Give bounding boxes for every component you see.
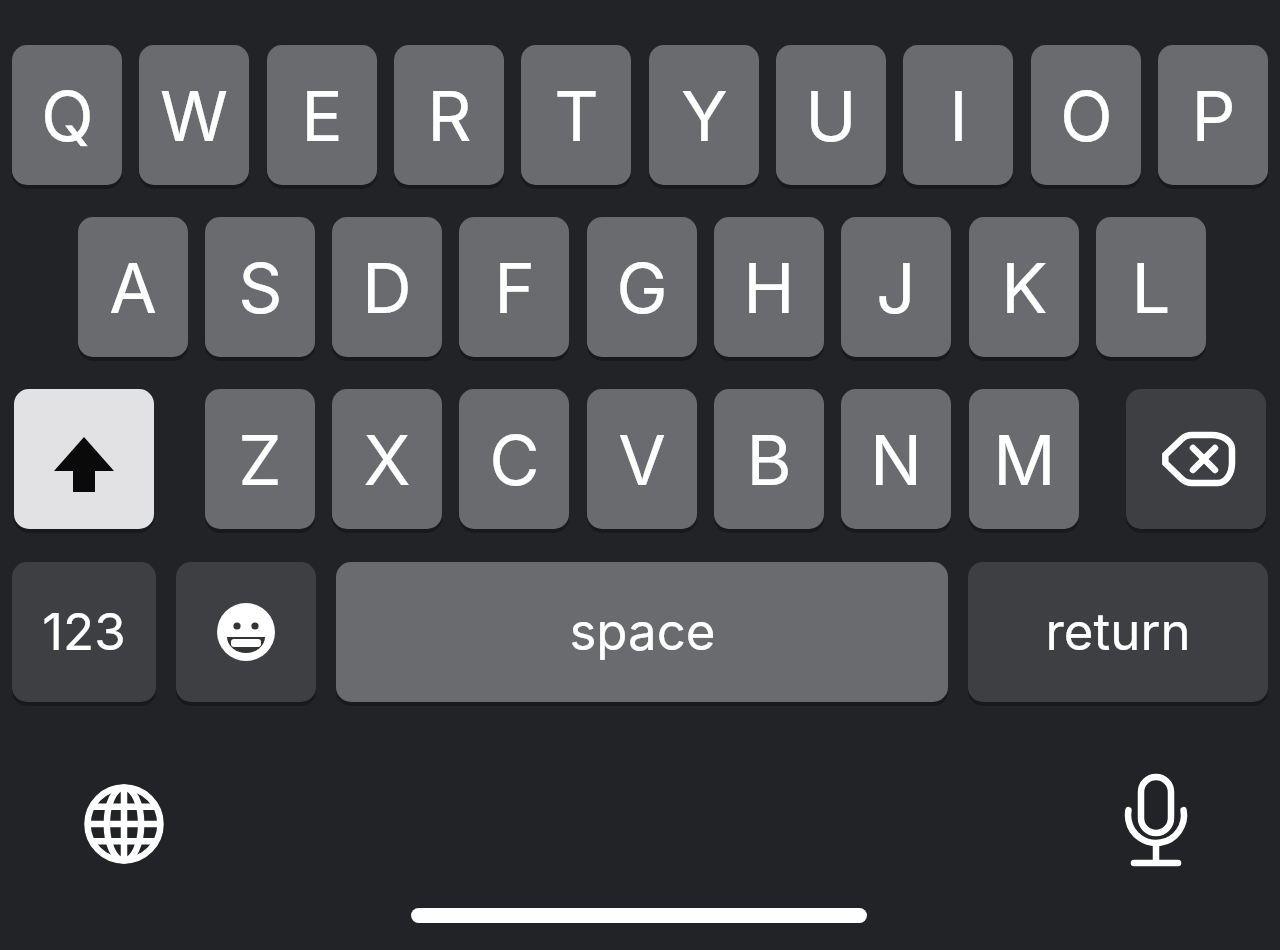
staticText: C (489, 418, 540, 501)
button[interactable]: A (78, 217, 188, 357)
staticText: G (616, 246, 668, 329)
button[interactable]: return (968, 562, 1268, 702)
staticText: Z (238, 418, 282, 501)
staticText: B (746, 418, 792, 501)
staticText: I (949, 74, 968, 157)
button[interactable]: 123 (12, 562, 156, 702)
staticText: J (876, 246, 916, 329)
button[interactable]: R (394, 45, 504, 185)
button[interactable]: O (1031, 45, 1141, 185)
staticText: Y (681, 74, 728, 157)
button[interactable]: space (336, 562, 948, 702)
button[interactable]: Z (205, 389, 315, 529)
button[interactable]: J (841, 217, 951, 357)
staticText: X (363, 418, 411, 501)
staticText: T (554, 74, 599, 157)
button[interactable]: E (267, 45, 377, 185)
staticText: U (805, 74, 857, 157)
staticText: E (301, 74, 343, 157)
staticText: 123 (42, 601, 126, 663)
button[interactable]: I (903, 45, 1013, 185)
staticText: H (743, 246, 795, 329)
staticText: P (1191, 74, 1236, 157)
staticText: space (569, 601, 716, 663)
staticText: V (618, 418, 666, 501)
button[interactable]: S (205, 217, 315, 357)
button[interactable] (75, 774, 175, 874)
button[interactable]: T (521, 45, 631, 185)
button[interactable] (14, 389, 154, 529)
button[interactable]: V (587, 389, 697, 529)
staticText: S (238, 246, 283, 329)
button[interactable]: Y (649, 45, 759, 185)
button[interactable]: F (459, 217, 569, 357)
staticText: L (1131, 246, 1171, 329)
staticText: Q (41, 74, 94, 157)
button[interactable]: N (841, 389, 951, 529)
button[interactable]: D (332, 217, 442, 357)
button[interactable]: P (1158, 45, 1268, 185)
button[interactable]: G (587, 217, 697, 357)
button[interactable]: W (139, 45, 249, 185)
button[interactable]: M (969, 389, 1079, 529)
button[interactable]: X (332, 389, 442, 529)
staticText: M (993, 418, 1056, 501)
staticText: W (160, 74, 228, 157)
button[interactable]: L (1096, 217, 1206, 357)
button[interactable]: Q (12, 45, 122, 185)
staticText: return (1045, 601, 1191, 663)
staticText: O (1060, 74, 1113, 157)
staticText: R (427, 74, 472, 157)
button[interactable]: C (459, 389, 569, 529)
button[interactable] (1106, 770, 1206, 870)
staticText: D (362, 246, 412, 329)
button[interactable]: B (714, 389, 824, 529)
button[interactable]: U (776, 45, 886, 185)
staticText: F (494, 246, 535, 329)
staticText: A (109, 246, 157, 329)
button[interactable]: K (969, 217, 1079, 357)
staticText: K (1001, 246, 1048, 329)
button[interactable]: H (714, 217, 824, 357)
staticText: N (870, 418, 922, 501)
button[interactable] (1126, 389, 1266, 529)
button[interactable] (176, 562, 316, 702)
